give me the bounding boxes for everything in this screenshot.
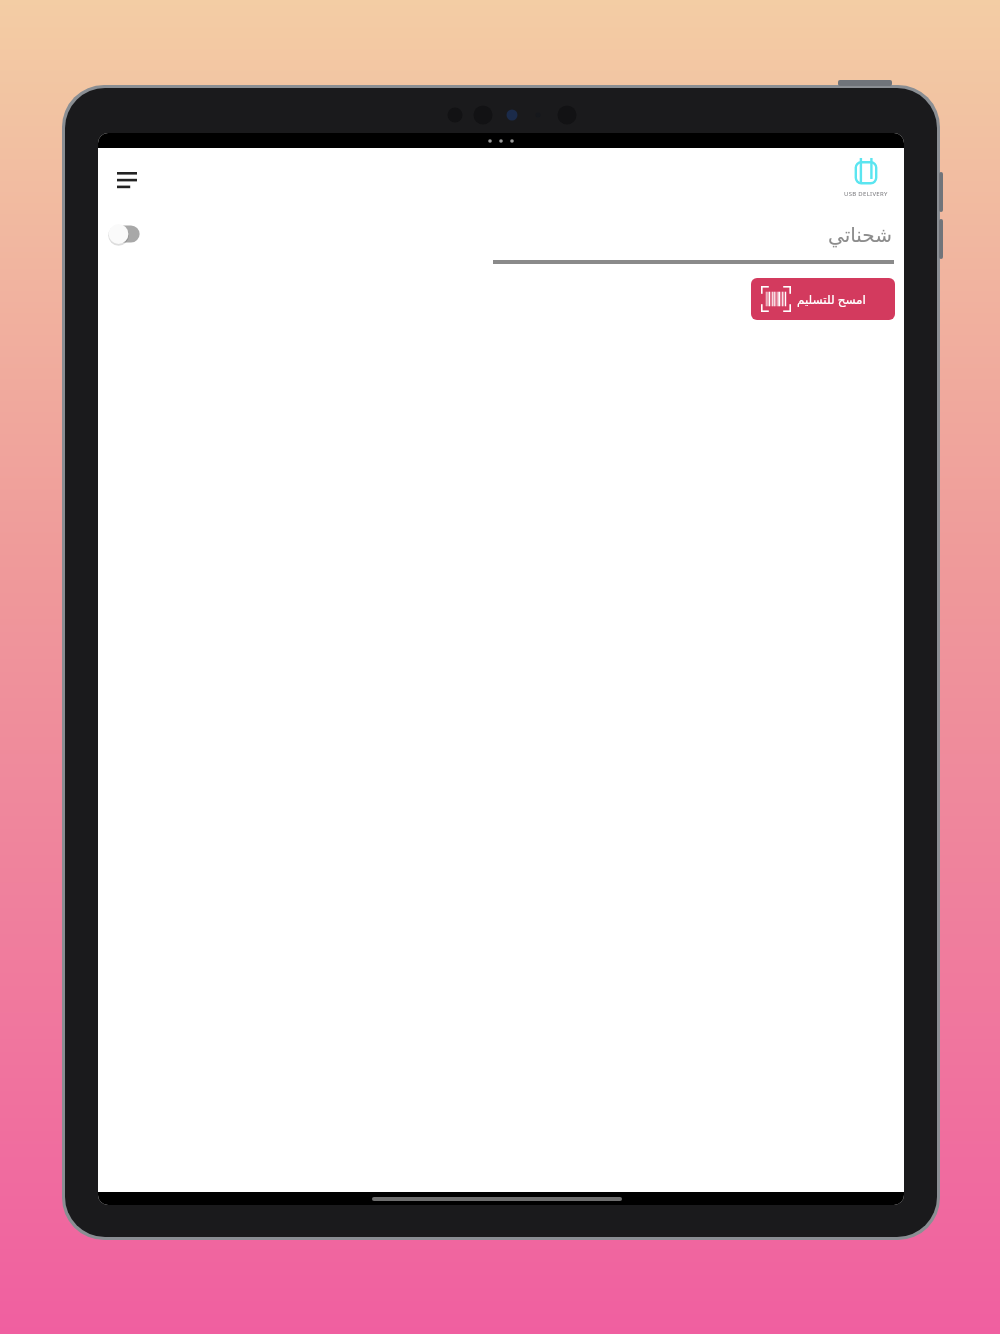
button[interactable]: USB Delivery logo <box>844 158 888 198</box>
staticText: امسح للتسليم <box>797 291 866 307</box>
staticText: USB DELIVERY <box>844 190 888 198</box>
staticText: شحناتي <box>827 223 892 246</box>
button[interactable]: امسح للتسليم <box>751 278 895 320</box>
button[interactable]: Menu <box>104 155 150 201</box>
button[interactable]: Toggle <box>108 217 152 251</box>
